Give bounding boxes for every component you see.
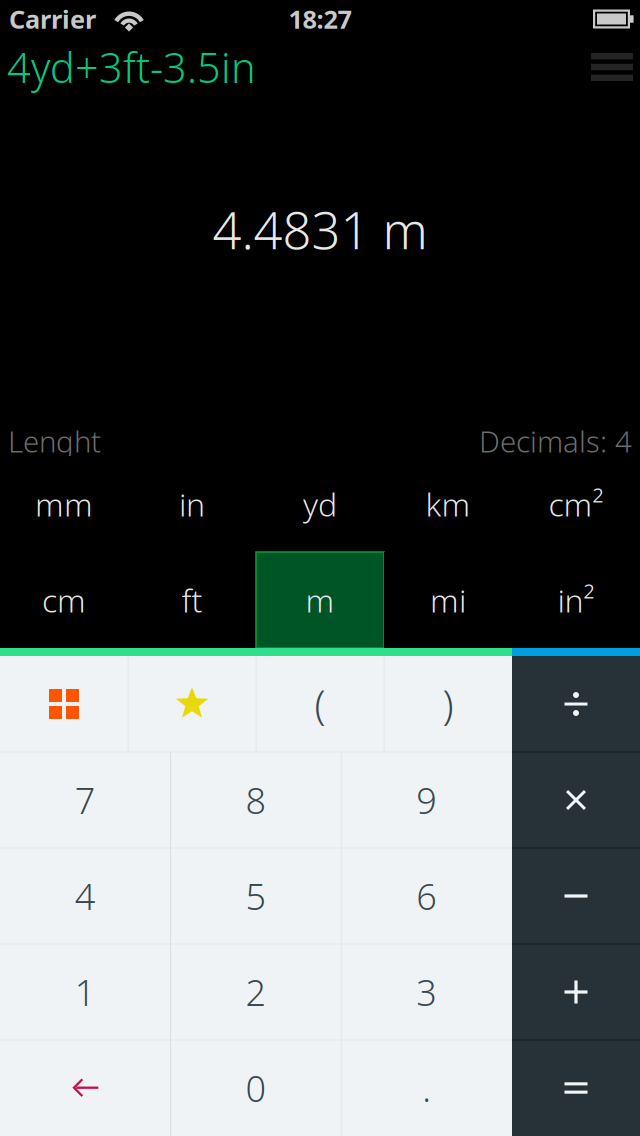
- button[interactable]: ): [384, 656, 512, 752]
- staticText: in: [179, 483, 205, 525]
- button[interactable]: 0: [171, 1040, 341, 1136]
- staticText: mi: [430, 579, 466, 621]
- staticText: cm: [548, 483, 592, 525]
- button[interactable]: m: [256, 552, 384, 648]
- staticText: 7: [75, 776, 96, 824]
- button[interactable]: 5: [171, 848, 341, 944]
- button[interactable]: in: [128, 456, 256, 552]
- staticText: 1: [75, 968, 96, 1016]
- button[interactable]: Plus: [512, 944, 640, 1040]
- button[interactable]: ft: [128, 552, 256, 648]
- button[interactable]: .: [341, 1040, 512, 1136]
- staticText: 4.4831 m: [212, 196, 427, 263]
- button[interactable]: (: [256, 656, 384, 752]
- button[interactable]: cm: [512, 456, 640, 552]
- staticText: 18:27: [288, 2, 351, 36]
- button[interactable]: yd: [256, 456, 384, 552]
- button[interactable]: 7: [0, 752, 171, 848]
- button[interactable]: 9: [341, 752, 512, 848]
- staticText: 6: [416, 872, 437, 920]
- button[interactable]: in: [512, 552, 640, 648]
- button[interactable]: cm: [0, 552, 128, 648]
- staticText: 9: [416, 776, 437, 824]
- staticText: 2: [245, 968, 266, 1016]
- button[interactable]: 1: [0, 944, 171, 1040]
- button[interactable]: 4: [0, 848, 171, 944]
- button[interactable]: Multiply: [512, 752, 640, 848]
- button[interactable]: 3: [341, 944, 512, 1040]
- staticText: 8: [245, 776, 266, 824]
- button[interactable]: 2: [171, 944, 341, 1040]
- staticText: km: [425, 483, 470, 525]
- staticText: 4yd+3ft-3.5in: [7, 40, 256, 94]
- staticText: in: [557, 579, 583, 621]
- staticText: m: [305, 579, 334, 621]
- staticText: 0: [245, 1064, 266, 1112]
- staticText: mm: [35, 483, 93, 525]
- staticText: Lenght: [8, 421, 101, 460]
- staticText: 3: [416, 968, 437, 1016]
- button[interactable]: Backspace: [0, 1040, 171, 1136]
- button[interactable]: Equals: [512, 1040, 640, 1136]
- button[interactable]: 8: [171, 752, 341, 848]
- button[interactable]: Unit categories: [0, 656, 128, 752]
- button[interactable]: mm: [0, 456, 128, 552]
- staticText: Carrier: [9, 2, 96, 36]
- staticText: .: [422, 1064, 431, 1112]
- staticText: ²: [583, 579, 594, 621]
- button[interactable]: Menu: [591, 53, 633, 81]
- staticText: cm: [42, 579, 86, 621]
- staticText: 5: [245, 872, 266, 920]
- staticText: 4: [75, 872, 96, 920]
- staticText: Decimals: 4: [479, 421, 632, 460]
- staticText: ²: [592, 483, 603, 525]
- staticText: ): [442, 677, 453, 730]
- button[interactable]: mi: [384, 552, 512, 648]
- button[interactable]: 6: [341, 848, 512, 944]
- button[interactable]: Minus: [512, 848, 640, 944]
- button[interactable]: Divide: [512, 656, 640, 752]
- staticText: ft: [181, 579, 202, 621]
- staticText: (: [314, 677, 325, 730]
- staticText: yd: [303, 483, 337, 525]
- button[interactable]: km: [384, 456, 512, 552]
- button[interactable]: Favorites: [128, 656, 256, 752]
